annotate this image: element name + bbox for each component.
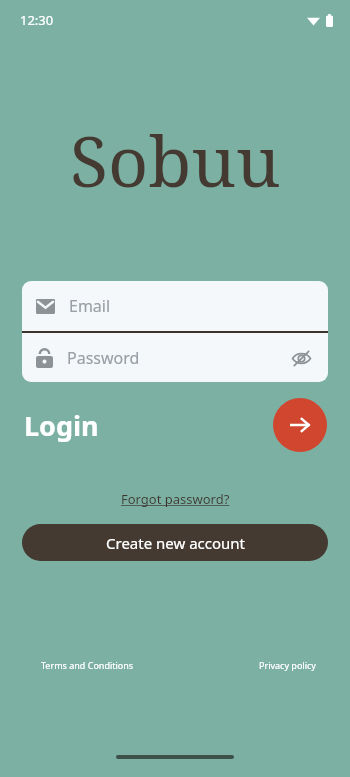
staticText: Sobuu [70, 112, 281, 207]
staticText: 12:30 [20, 11, 54, 29]
button[interactable]: Password [22, 333, 328, 382]
button[interactable]: Terms and Conditions [41, 659, 134, 671]
button[interactable]: Forgot password? [115, 488, 236, 510]
button[interactable]: Email [22, 281, 328, 331]
button[interactable]: Show password [284, 341, 318, 375]
staticText: Create new account [106, 533, 245, 553]
staticText: Email [69, 295, 111, 317]
staticText: Password [67, 347, 140, 369]
button[interactable]: Privacy policy [259, 659, 316, 671]
button[interactable]: Create new account [22, 524, 328, 561]
button[interactable]: Login [24, 407, 99, 444]
button[interactable]: Login [273, 398, 327, 452]
